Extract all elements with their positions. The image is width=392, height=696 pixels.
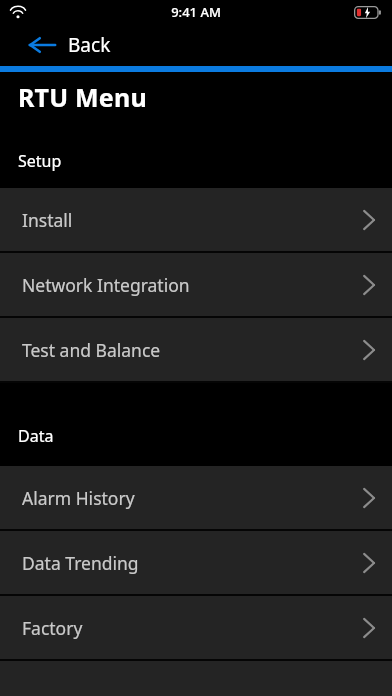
button[interactable]: Alarm History: [0, 466, 392, 529]
staticText: Alarm History: [22, 486, 135, 510]
staticText: Factory: [22, 616, 83, 640]
button[interactable]: Install: [0, 188, 392, 251]
staticText: Data: [18, 425, 54, 447]
staticText: Test and Balance: [22, 338, 161, 362]
staticText: RTU Menu: [18, 80, 147, 114]
button[interactable]: Test and Balance: [0, 318, 392, 381]
button[interactable]: Data Trending: [0, 531, 392, 594]
button[interactable]: Factory: [0, 596, 392, 659]
button[interactable]: Network Integration: [0, 253, 392, 316]
staticText: Network Integration: [22, 273, 190, 297]
other: Back: [28, 35, 56, 55]
staticText: Back: [68, 32, 111, 58]
staticText: Setup: [18, 150, 62, 172]
staticText: Data Trending: [22, 551, 139, 575]
staticText: 9:41 AM: [0, 3, 392, 21]
staticText: Install: [22, 208, 73, 232]
button[interactable]: Back: [0, 24, 392, 66]
